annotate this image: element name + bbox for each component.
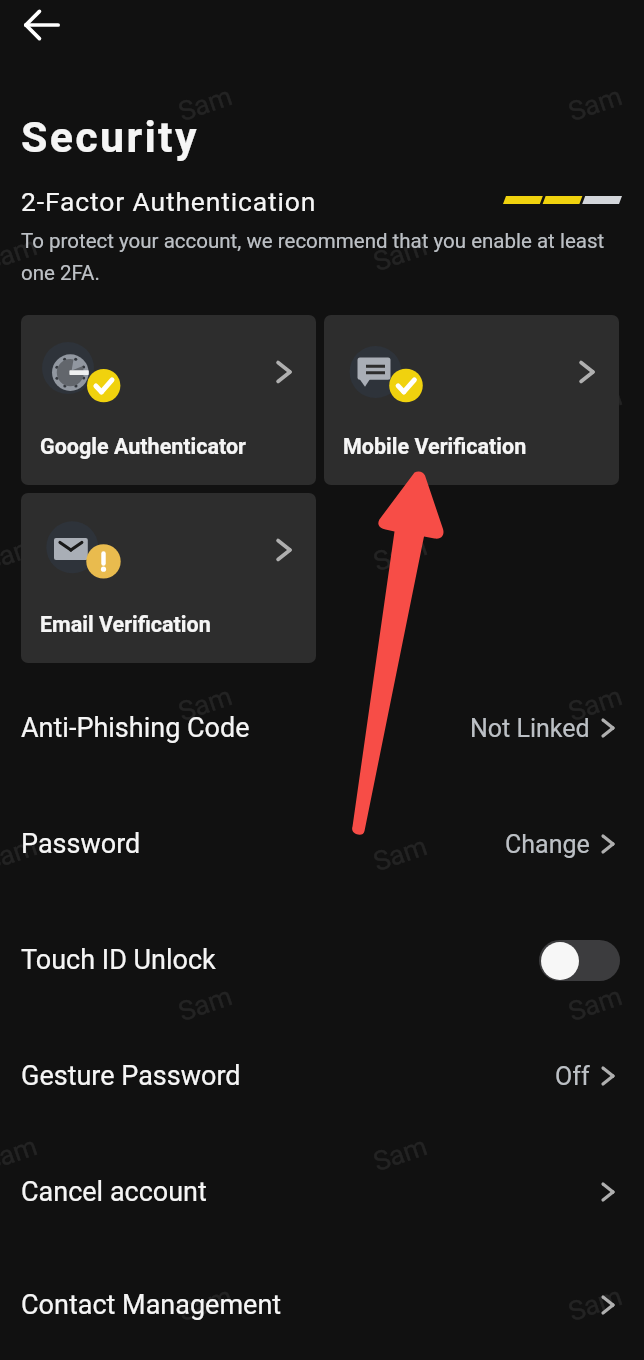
staticText: Sam bbox=[369, 830, 432, 878]
staticText: Sam bbox=[564, 680, 627, 728]
button[interactable]: Email Verification bbox=[21, 493, 316, 663]
staticText: Anti-Phishing Code bbox=[21, 712, 250, 744]
staticText: Sam bbox=[174, 980, 237, 1028]
staticText: To protect your account, we recommend th… bbox=[21, 229, 627, 285]
staticText: Not Linked bbox=[470, 714, 590, 743]
staticText: Gesture Password bbox=[21, 1060, 241, 1092]
staticText: Password bbox=[21, 828, 141, 860]
staticText: Sam bbox=[174, 680, 237, 728]
button[interactable]: Anti-Phishing Code bbox=[0, 670, 644, 786]
staticText: Cancel account bbox=[21, 1176, 207, 1208]
staticText: Email Verification bbox=[40, 612, 211, 637]
button[interactable]: Mobile Verification bbox=[324, 315, 619, 485]
staticText: Sam bbox=[0, 230, 42, 278]
button[interactable]: Back bbox=[12, 0, 72, 55]
staticText: Touch ID Unlock bbox=[21, 944, 216, 976]
staticText: Google Authenticator bbox=[40, 434, 246, 459]
staticText: Sam bbox=[369, 530, 432, 578]
staticText: Sam bbox=[564, 80, 627, 128]
staticText: Sam bbox=[174, 80, 237, 128]
staticText: Sam bbox=[369, 230, 432, 278]
staticText: Sam bbox=[0, 1130, 42, 1178]
staticText: Sam bbox=[564, 380, 627, 428]
button[interactable]: Password bbox=[0, 786, 644, 902]
button[interactable]: Touch ID Unlock toggle bbox=[539, 940, 620, 981]
button[interactable]: Touch ID Unlock bbox=[0, 902, 644, 1018]
staticText: Change bbox=[505, 830, 590, 859]
staticText: Sam bbox=[0, 530, 42, 578]
button[interactable]: Contact Management bbox=[0, 1250, 644, 1360]
button[interactable]: Gesture Password bbox=[0, 1018, 644, 1134]
staticText: Security bbox=[21, 112, 199, 162]
staticText: Mobile Verification bbox=[343, 434, 527, 459]
staticText: Sam bbox=[564, 980, 627, 1028]
staticText: Off bbox=[555, 1062, 590, 1091]
staticText: Sam bbox=[0, 830, 42, 878]
button[interactable]: Google Authenticator bbox=[21, 315, 316, 485]
staticText: 2-Factor Authentication bbox=[21, 186, 317, 217]
staticText: Sam bbox=[564, 1280, 627, 1328]
staticText: Sam bbox=[369, 1130, 432, 1178]
staticText: Sam bbox=[174, 1280, 237, 1328]
button[interactable]: Cancel account bbox=[0, 1134, 644, 1250]
staticText: Contact Management bbox=[21, 1289, 282, 1321]
